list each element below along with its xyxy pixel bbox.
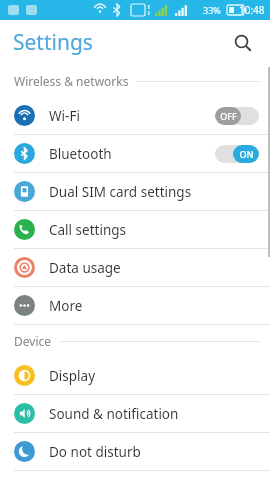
button[interactable]: Off xyxy=(215,107,259,125)
staticText: Data usage xyxy=(49,259,121,277)
button[interactable]: Dual SIM card settings xyxy=(0,173,270,211)
button[interactable]: Display xyxy=(0,357,270,395)
button[interactable]: Sound & notification xyxy=(0,395,270,433)
button[interactable]: Call settings xyxy=(0,211,270,249)
button[interactable]: Data usage xyxy=(0,249,270,287)
button[interactable]: Wi-Fi xyxy=(0,97,270,135)
staticText: Wi-Fi xyxy=(49,107,80,125)
staticText: Do not disturb xyxy=(49,443,141,461)
staticText: More xyxy=(49,297,83,315)
staticText: ON xyxy=(239,148,254,160)
staticText: OFF xyxy=(220,110,237,122)
staticText: 10:48 xyxy=(239,3,265,17)
button[interactable]: Search xyxy=(226,26,260,60)
staticText: Display xyxy=(49,367,96,385)
staticText: Sound & notification xyxy=(49,405,179,423)
staticText: 33% xyxy=(203,4,221,16)
button[interactable]: More xyxy=(0,287,270,325)
staticText: Settings xyxy=(13,28,93,57)
staticText: Call settings xyxy=(49,221,127,239)
staticText: Dual SIM card settings xyxy=(49,183,192,201)
button[interactable]: Do not disturb xyxy=(0,433,270,471)
button[interactable]: Bluetooth xyxy=(0,135,270,173)
staticText: Wireless & networks xyxy=(14,73,129,89)
staticText: Bluetooth xyxy=(49,145,112,163)
staticText: Device xyxy=(14,333,52,349)
button[interactable]: On xyxy=(215,145,259,163)
